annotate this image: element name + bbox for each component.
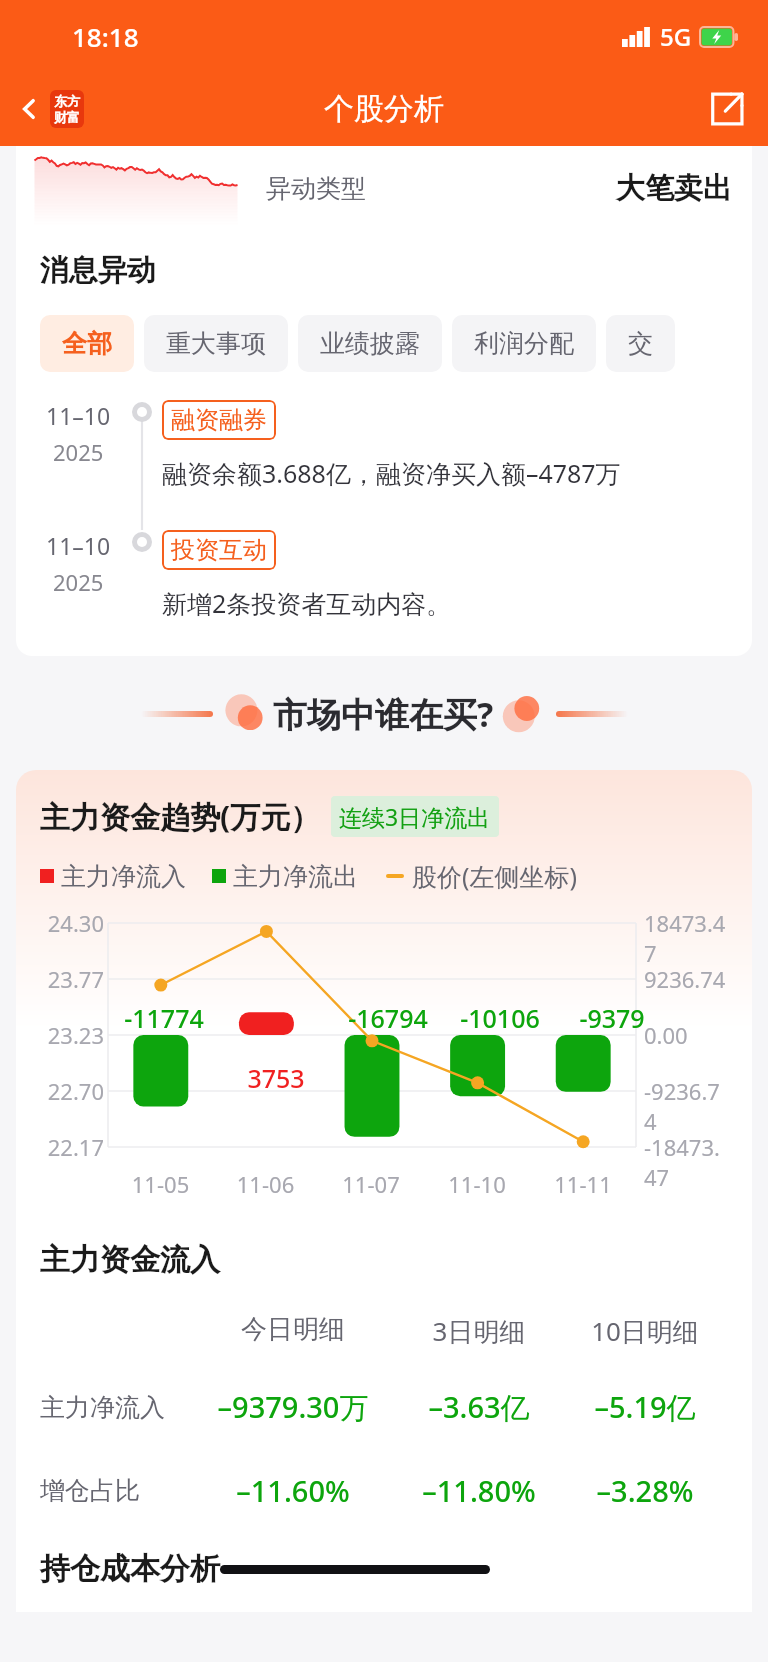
staticText: 18473.47 bbox=[644, 908, 732, 968]
button[interactable]: Share bbox=[700, 84, 768, 134]
staticText: 个股分析 bbox=[324, 90, 444, 128]
staticText: 2025 bbox=[53, 567, 104, 597]
staticText: -18473.47 bbox=[644, 1132, 732, 1192]
staticText: 23.23 bbox=[36, 1020, 104, 1050]
staticText: 融资余额3.688亿，融资净买入额–4787万 bbox=[162, 456, 621, 490]
staticText: 连续3日净流出 bbox=[339, 801, 491, 832]
staticText: -11774 bbox=[108, 1001, 220, 1035]
staticText: 9236.74 bbox=[644, 964, 732, 994]
staticText: 3753 bbox=[220, 1061, 332, 1095]
button[interactable]: 融资融券 bbox=[162, 400, 276, 440]
staticText: 交 bbox=[628, 328, 653, 359]
staticText: -10106 bbox=[444, 1001, 556, 1035]
staticText: 主力净流入 bbox=[40, 1392, 190, 1423]
staticText: –5.19亿 bbox=[562, 1387, 728, 1427]
button[interactable]: 投资互动 bbox=[162, 530, 276, 570]
staticText: 利润分配 bbox=[474, 328, 574, 359]
staticText: 市场中谁在买? bbox=[273, 691, 494, 737]
staticText: 2025 bbox=[53, 437, 104, 467]
staticText: 异动类型 bbox=[266, 173, 366, 204]
staticText: 22.17 bbox=[36, 1132, 104, 1162]
staticText: 0.00 bbox=[644, 1020, 732, 1050]
staticText: 主力资金流入 bbox=[40, 1241, 220, 1279]
staticText: –11.60% bbox=[190, 1471, 396, 1510]
staticText: -16794 bbox=[332, 1001, 444, 1035]
staticText: 24.30 bbox=[36, 908, 104, 938]
staticText: –3.28% bbox=[562, 1471, 728, 1510]
staticText: 融资融券 bbox=[171, 405, 267, 435]
staticText: 消息异动 bbox=[40, 252, 156, 289]
button[interactable]: 交 bbox=[606, 315, 675, 372]
staticText: 财富 bbox=[54, 109, 80, 125]
staticText: 10日明细 bbox=[562, 1313, 728, 1349]
staticText: 18:18 bbox=[72, 19, 139, 54]
button[interactable]: 重大事项 bbox=[144, 315, 288, 372]
staticText: 主力资金趋势(万元） bbox=[40, 796, 321, 837]
staticText: 5G bbox=[660, 20, 692, 53]
staticText: 大笔卖出 bbox=[616, 170, 732, 207]
button[interactable]: 利润分配 bbox=[452, 315, 596, 372]
button[interactable]: Back bbox=[0, 84, 92, 134]
staticText: 全部 bbox=[62, 328, 112, 359]
staticText: 投资互动 bbox=[171, 535, 267, 565]
staticText: –9379.30万 bbox=[190, 1387, 396, 1427]
button[interactable]: 全部 bbox=[40, 315, 134, 372]
staticText: 增仓占比 bbox=[40, 1475, 190, 1506]
staticText: 新增2条投资者互动内容。 bbox=[162, 586, 452, 620]
staticText: 业绩披露 bbox=[320, 328, 420, 359]
staticText: 11-10 bbox=[424, 1169, 530, 1199]
staticText: 11-07 bbox=[318, 1169, 424, 1199]
staticText: 11-06 bbox=[213, 1169, 318, 1199]
staticText: 主力净流出 bbox=[233, 861, 358, 892]
staticText: 23.77 bbox=[36, 964, 104, 994]
staticText: 11–10 bbox=[46, 530, 111, 561]
staticText: 22.70 bbox=[36, 1076, 104, 1106]
staticText: 持仓成本分析 bbox=[40, 1550, 220, 1588]
staticText: 主力净流入 bbox=[61, 861, 186, 892]
staticText: 重大事项 bbox=[166, 328, 266, 359]
staticText: 11-11 bbox=[530, 1169, 636, 1199]
staticText: –11.80% bbox=[396, 1471, 562, 1510]
staticText: 11–10 bbox=[46, 400, 111, 431]
staticText: 今日明细 bbox=[190, 1313, 396, 1346]
staticText: -9379 bbox=[556, 1001, 668, 1035]
staticText: 东方 bbox=[54, 93, 80, 109]
staticText: 股价(左侧坐标) bbox=[412, 859, 578, 893]
button[interactable]: 业绩披露 bbox=[298, 315, 442, 372]
staticText: –3.63亿 bbox=[396, 1387, 562, 1427]
staticText: 11-05 bbox=[108, 1169, 213, 1199]
staticText: -9236.74 bbox=[644, 1076, 732, 1136]
staticText: 3日明细 bbox=[396, 1313, 562, 1349]
